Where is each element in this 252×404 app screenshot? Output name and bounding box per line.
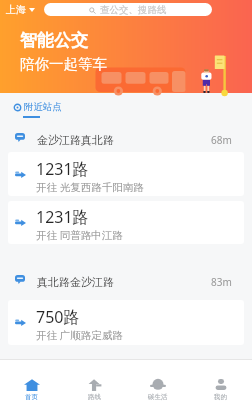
button[interactable]: 附近站点 (0, 101, 72, 113)
staticText: 附近站点 (24, 101, 62, 113)
staticText: 68m (211, 133, 232, 147)
staticText: 83m (211, 275, 232, 289)
button[interactable]: 碳生活 (126, 360, 189, 404)
staticText: 我的 (214, 393, 227, 401)
staticText: 金沙江路真北路 (37, 133, 114, 147)
button[interactable]: 首页 (0, 360, 63, 404)
button[interactable]: 查公交、搜路线 (44, 3, 212, 16)
staticText: 陪你一起等车 (20, 55, 107, 73)
staticText: 1231路 (36, 158, 89, 180)
staticText: 路线 (88, 393, 101, 401)
button[interactable]: 上海 (0, 3, 39, 16)
staticText: 开往 光复西路千阳南路 (36, 180, 144, 194)
staticText: 智能公交 (20, 30, 88, 51)
button[interactable]: 750路 (8, 300, 244, 345)
staticText: 首页 (25, 393, 38, 401)
button[interactable]: 真北路金沙江路 (0, 265, 252, 294)
staticText: 750路 (36, 306, 80, 328)
staticText: 开往 广顺路定威路 (36, 328, 123, 342)
staticText: 1231路 (36, 206, 89, 228)
staticText: 真北路金沙江路 (37, 275, 114, 289)
button[interactable]: 路线 (63, 360, 126, 404)
staticText: 上海 (6, 3, 26, 16)
button[interactable]: 金沙江路真北路 (0, 123, 252, 152)
button[interactable]: 我的 (189, 360, 252, 404)
staticText: 查公交、搜路线 (100, 4, 167, 16)
button[interactable]: 1231路 (8, 201, 244, 244)
staticText: 开往 同普路中江路 (36, 228, 123, 242)
button[interactable]: 1231路 (8, 152, 244, 196)
staticText: 碳生活 (148, 393, 168, 401)
